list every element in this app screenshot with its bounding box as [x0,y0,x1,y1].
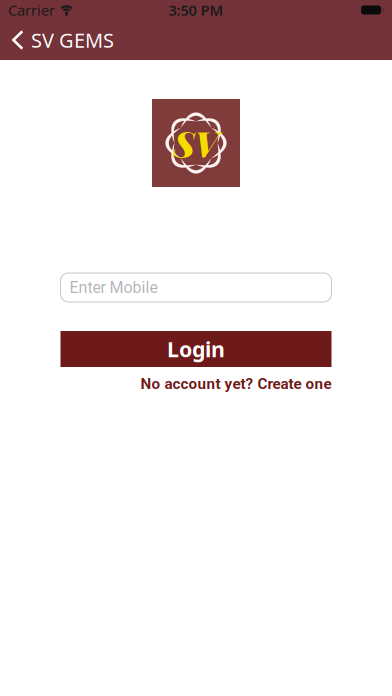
button[interactable]: Login [60,331,331,367]
button[interactable]: No account yet? Create one [140,375,331,393]
staticText: Carrier [8,0,55,20]
staticText: SV [173,120,218,166]
button[interactable]: SV GEMS [0,20,124,60]
staticText: SV GEMS [31,27,114,53]
staticText: Enter Mobile [69,278,157,297]
staticText: 3:50 PM [168,0,223,20]
staticText: Login [167,335,225,363]
staticText: No account yet? Create one [140,375,331,393]
